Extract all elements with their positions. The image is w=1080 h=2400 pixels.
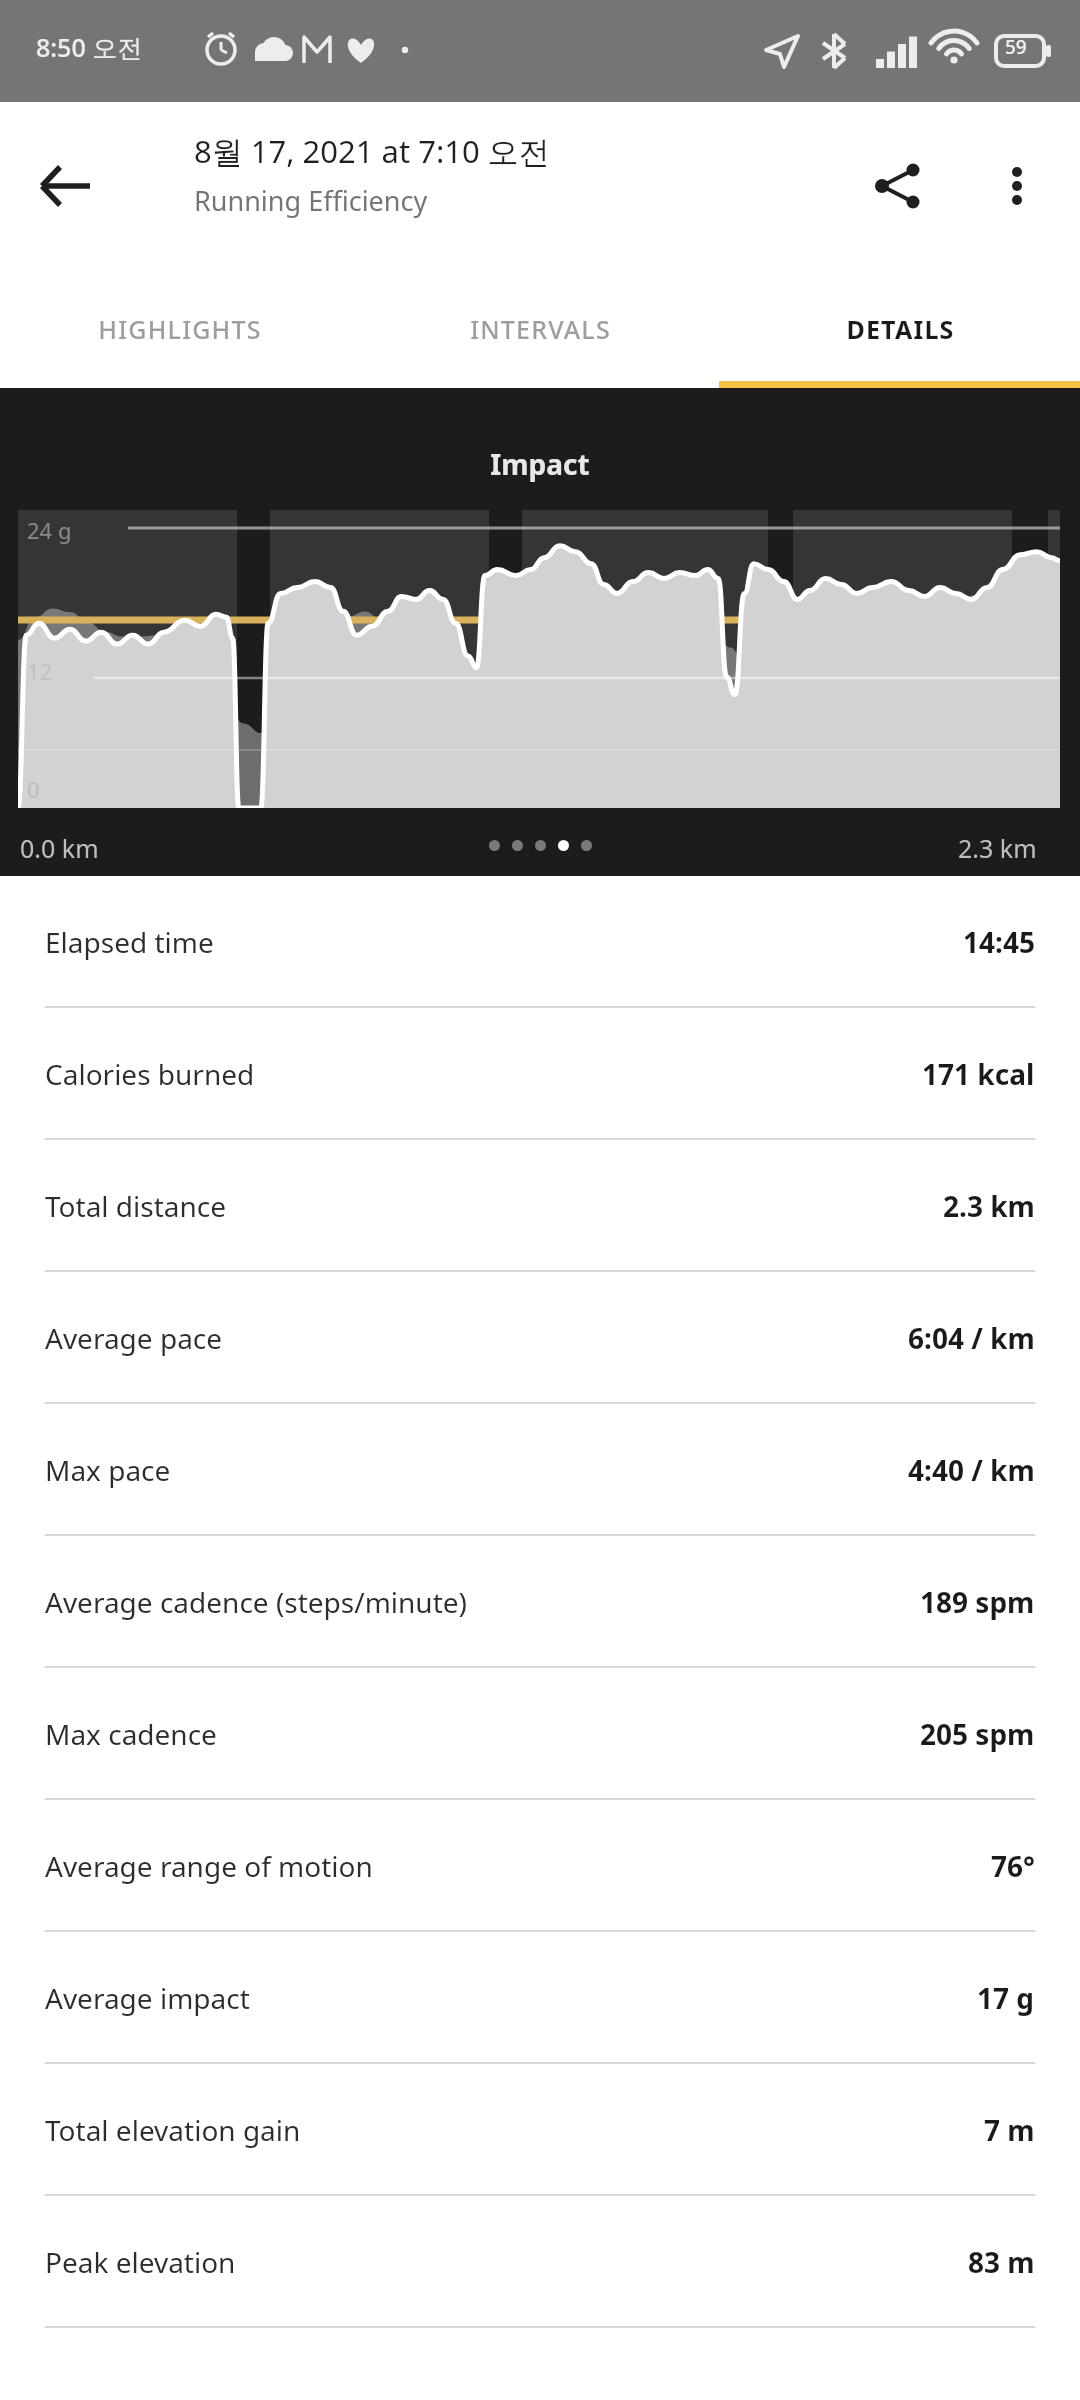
staticText: 2.3 km — [943, 1187, 1035, 1225]
staticText: 8:50 오전 — [36, 30, 143, 64]
staticText: Average range of motion — [45, 1847, 373, 1885]
staticText: 17 g — [977, 1979, 1035, 2017]
button[interactable]: INTERVALS — [360, 270, 720, 388]
staticText: 0.0 km — [20, 831, 99, 865]
staticText: Total distance — [45, 1187, 227, 1225]
staticText: 7 m — [984, 2111, 1035, 2149]
button[interactable]: Total distance — [0, 1140, 1080, 1272]
staticText: Average cadence (steps/minute) — [45, 1583, 467, 1621]
staticText: 6:04 / km — [908, 1319, 1035, 1357]
button[interactable]: Elapsed time — [0, 876, 1080, 1008]
button[interactable]: HIGHLIGHTS — [0, 270, 360, 388]
staticText: 0 — [27, 774, 40, 804]
button[interactable]: Average pace — [0, 1272, 1080, 1404]
staticText: 83 m — [968, 2243, 1035, 2281]
staticText: 76° — [991, 1847, 1035, 1885]
staticText: 8월 17, 2021 at 7:10 오전 — [194, 130, 550, 172]
staticText: 59 — [1005, 34, 1027, 60]
staticText: Total elevation gain — [45, 2111, 301, 2149]
button[interactable]: Back — [22, 144, 106, 228]
staticText: Impact — [0, 445, 1080, 483]
button[interactable]: DETAILS — [720, 270, 1080, 388]
staticText: Peak elevation — [45, 2243, 236, 2281]
button[interactable]: Max cadence — [0, 1668, 1080, 1800]
button[interactable]: Max pace — [0, 1404, 1080, 1536]
button[interactable]: More options — [975, 144, 1059, 228]
button[interactable]: Average cadence (steps/minute) — [0, 1536, 1080, 1668]
staticText: Max pace — [45, 1451, 171, 1489]
staticText: Average pace — [45, 1319, 223, 1357]
button[interactable]: Peak elevation — [0, 2196, 1080, 2328]
button[interactable]: Average impact — [0, 1932, 1080, 2064]
staticText: 2.3 km — [958, 831, 1037, 865]
staticText: Running Efficiency — [194, 182, 428, 219]
staticText: 205 spm — [920, 1715, 1035, 1753]
staticText: 12 — [27, 656, 53, 686]
staticText: 4:40 / km — [908, 1451, 1035, 1489]
staticText: Elapsed time — [45, 923, 214, 961]
button[interactable]: Calories burned — [0, 1008, 1080, 1140]
button[interactable]: Average range of motion — [0, 1800, 1080, 1932]
staticText: 171 kcal — [922, 1055, 1035, 1093]
staticText: Max cadence — [45, 1715, 217, 1753]
staticText: Average impact — [45, 1979, 250, 2017]
staticText: 189 spm — [920, 1583, 1035, 1621]
staticText: HIGHLIGHTS — [98, 312, 262, 346]
staticText: 14:45 — [963, 923, 1035, 961]
staticText: INTERVALS — [470, 312, 611, 346]
button[interactable]: Impact chart — [0, 388, 1080, 876]
button[interactable]: Total elevation gain — [0, 2064, 1080, 2196]
staticText: Calories burned — [45, 1055, 255, 1093]
staticText: 24 g — [27, 515, 72, 545]
staticText: DETAILS — [846, 312, 955, 346]
button[interactable]: Share — [855, 144, 939, 228]
